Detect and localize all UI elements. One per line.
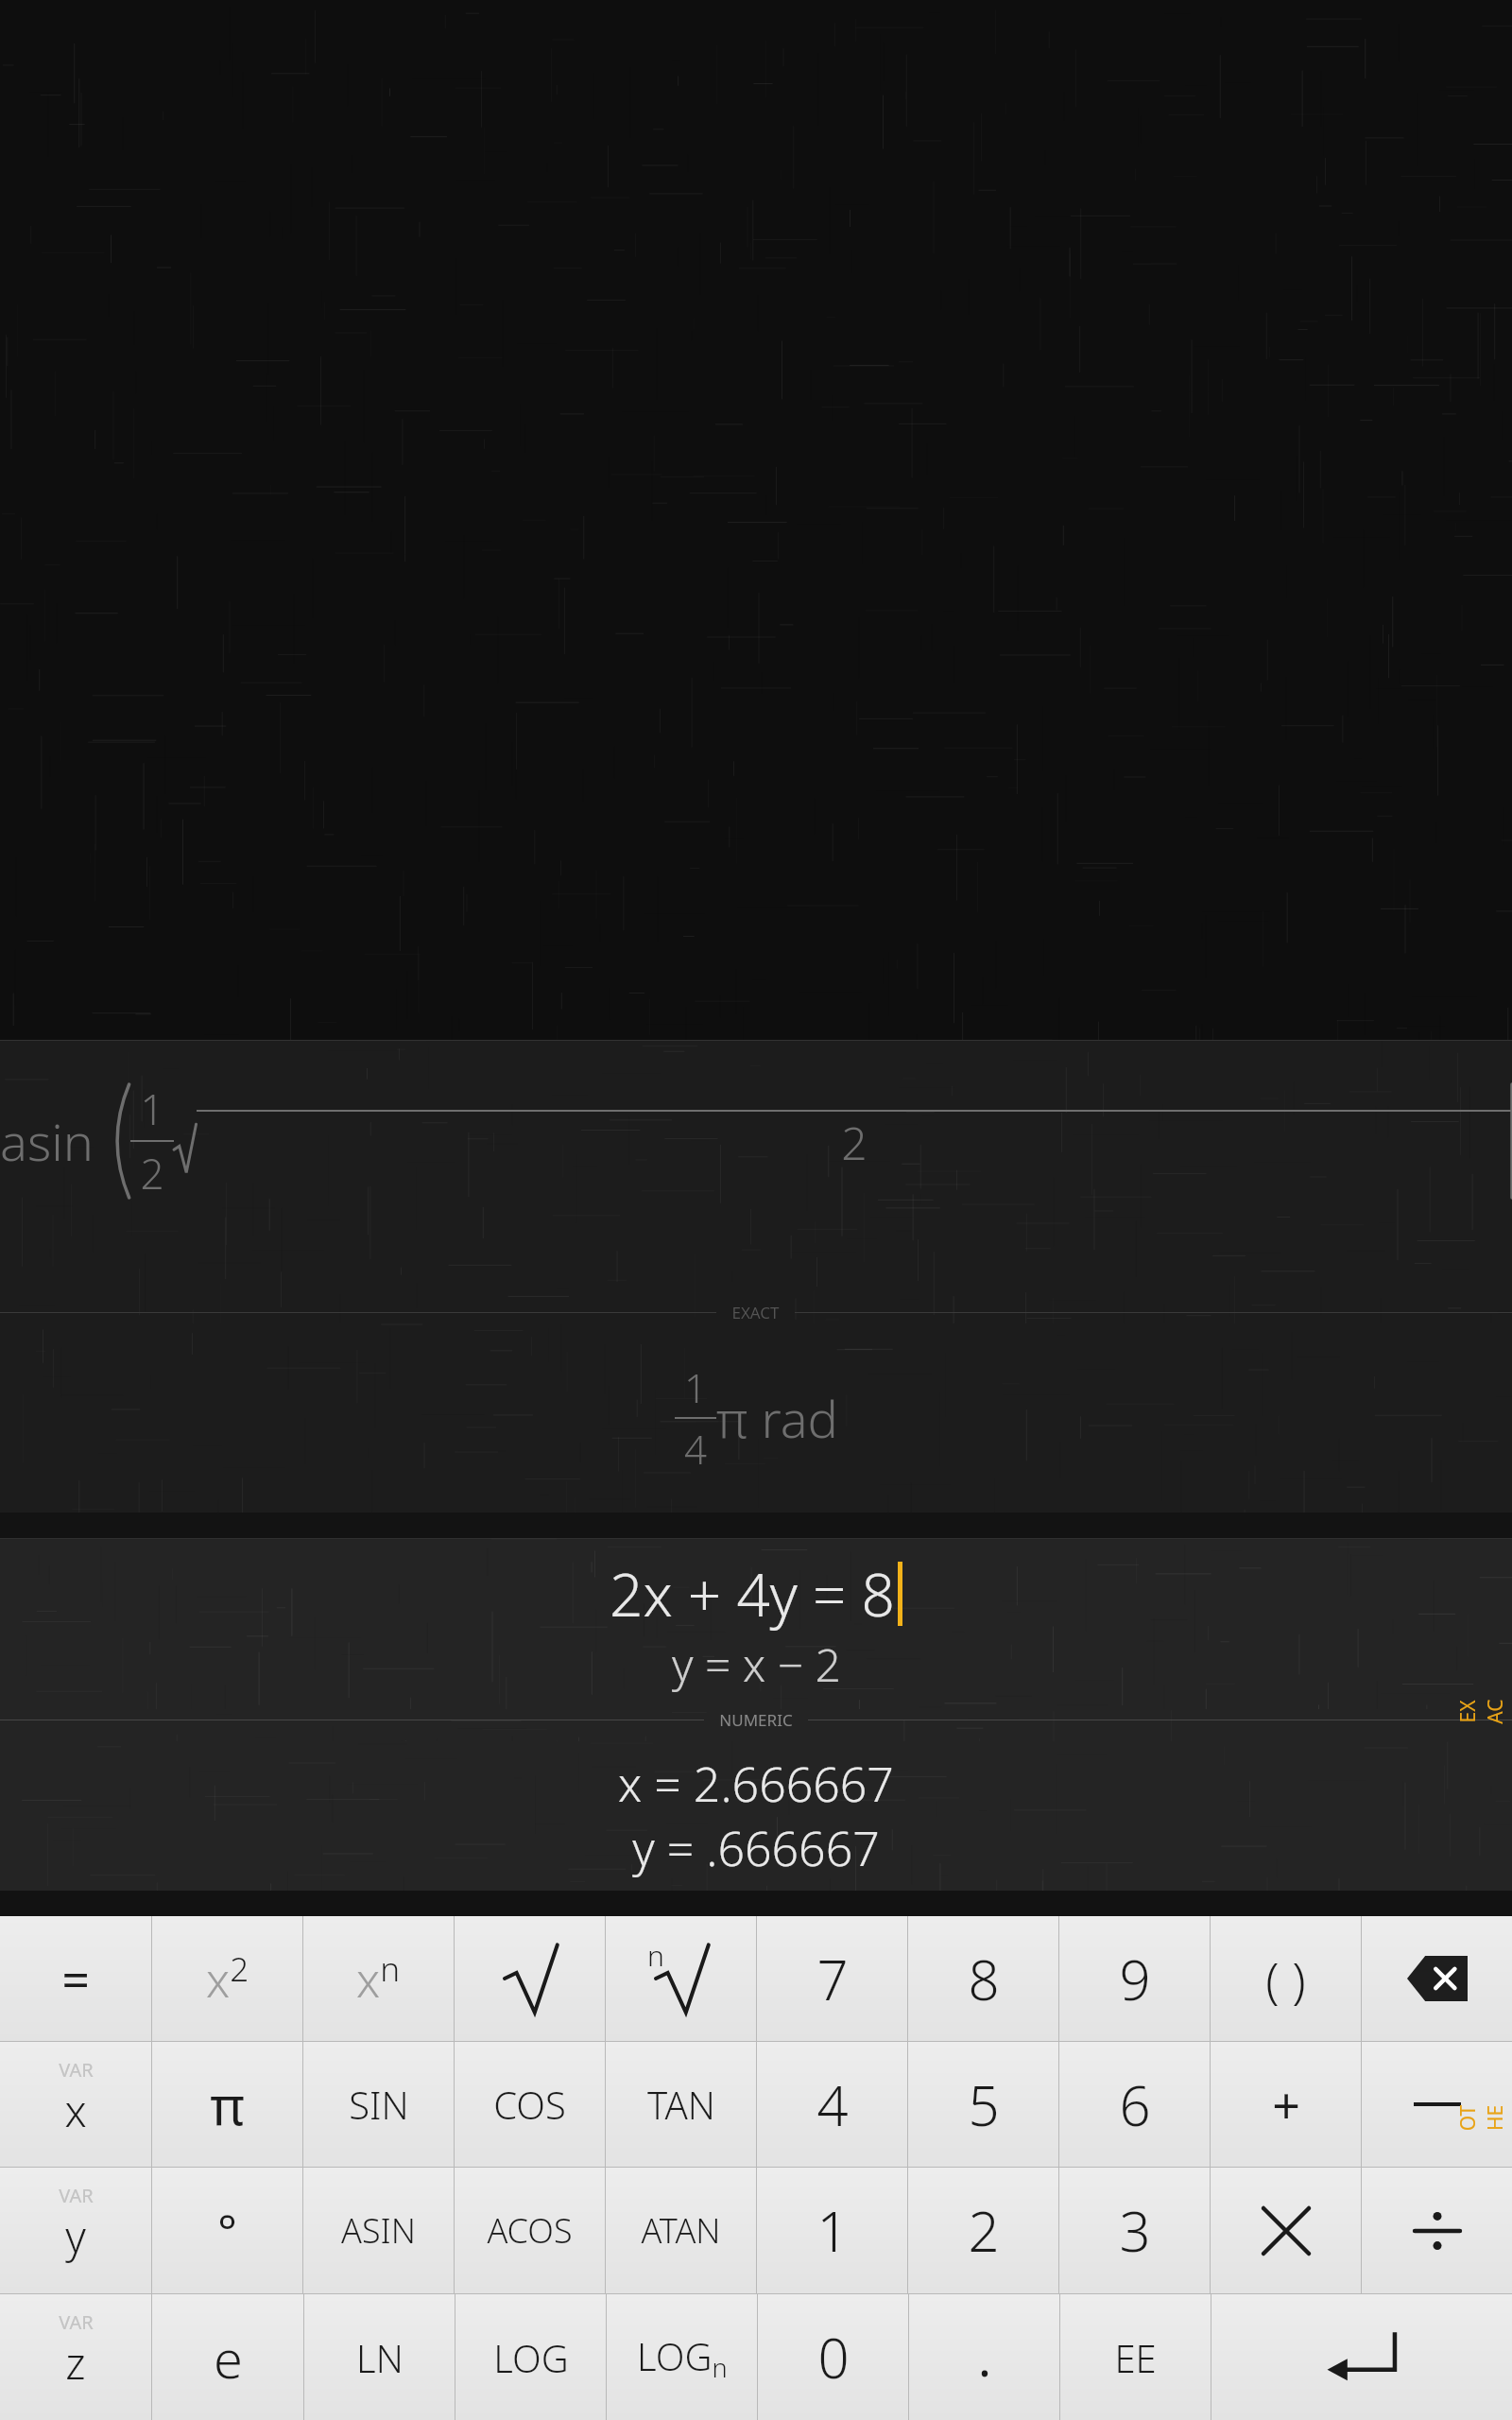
staticText: 2 [140,1145,164,1201]
button[interactable]: ASIN [303,2168,454,2293]
staticText: LOGn [637,2330,728,2385]
button[interactable]: Nth root [606,1916,756,2041]
staticText: x = 2.666667 [618,1752,894,1816]
staticText: y [65,2206,86,2266]
staticText: ATAN [641,2207,721,2254]
staticText: COS [493,2079,566,2130]
staticText: ACOS [487,2207,573,2254]
button[interactable]: LN [304,2294,455,2420]
staticText: . [978,2324,991,2391]
button[interactable]: 6 [1059,2042,1210,2167]
button[interactable]: asin [0,1040,1512,1323]
staticText: xn [356,1946,401,2012]
staticText: 1 [140,1080,164,1137]
staticText: 4 [684,1422,707,1476]
staticText: 1 [816,2193,849,2268]
button[interactable]: Square [152,1916,302,2041]
button[interactable]: Decimal point [909,2294,1059,2420]
staticText: SIN [349,2079,409,2130]
button[interactable]: TAN [606,2042,756,2167]
staticText: 7 [816,1942,849,2016]
staticText: NUMERIC [719,1709,793,1731]
button[interactable]: EE [1060,2294,1211,2420]
button[interactable]: Plus [1211,2042,1361,2167]
button[interactable]: 2x + 4y = 8 [0,1539,1512,1709]
staticText: ( ) [1265,1945,1306,2013]
staticText: 3 [1119,2193,1151,2268]
button[interactable]: Degrees [152,2168,302,2293]
staticText: = [61,1945,90,2013]
button[interactable]: Equals [0,1916,151,2041]
staticText: 1 [684,1360,707,1414]
button[interactable]: OTHER [1478,2066,1512,2169]
staticText: VAR [59,2183,94,2208]
button[interactable]: 9 [1059,1916,1210,2041]
staticText: e [214,2322,243,2394]
button[interactable]: Square root [455,1916,605,2041]
button[interactable]: 2 [908,2168,1058,2293]
staticText: 2 [968,2193,1000,2268]
staticText: VAR [59,2309,94,2335]
staticText: 2 [841,1112,868,1173]
staticText: ° [217,2200,237,2261]
staticText: EXACT [1454,1694,1512,1729]
button[interactable]: ACOS [455,2168,605,2293]
button[interactable]: Enter [1211,2294,1512,2420]
staticText: + [1272,2071,1300,2138]
button[interactable]: Power [303,1916,454,2041]
button[interactable]: 5 [908,2042,1058,2167]
button[interactable]: 0 [758,2294,908,2420]
button[interactable]: LOG [455,2294,606,2420]
staticText: x2 [206,1946,249,2012]
button[interactable]: Minus [1362,2042,1512,2167]
button[interactable]: Pi [152,2042,302,2167]
staticText: OTHER [1454,2101,1512,2135]
staticText: x [64,2081,87,2140]
button[interactable]: COS [455,2042,605,2167]
staticText: asin [0,1106,94,1176]
staticText: 4 [816,2067,849,2142]
staticText: 0 [817,2320,850,2394]
staticText: z [65,2333,86,2393]
staticText: 6 [1119,2067,1151,2142]
staticText: 8 [968,1942,1000,2016]
staticText: VAR [59,2057,94,2083]
button[interactable]: Variable y [0,2168,151,2293]
button[interactable]: x = 2.666667 [0,1741,1512,1891]
staticText: LN [356,2332,404,2383]
staticText: y = x − 2 [672,1633,841,1695]
button[interactable]: 1 [0,1323,1512,1512]
button[interactable]: 4 [757,2042,907,2167]
button[interactable]: EXACT [1478,1659,1512,1763]
staticText: EXACT [731,1302,780,1323]
staticText: 5 [968,2067,1000,2142]
button[interactable]: Parentheses [1211,1916,1361,2041]
button[interactable]: Divide [1362,2168,1512,2293]
button[interactable]: 3 [1059,2168,1210,2293]
staticText: n [647,1936,664,1975]
staticText: π [210,2068,245,2140]
staticText: LOG [493,2332,569,2383]
button[interactable]: Backspace [1362,1916,1512,2041]
staticText: y = .666667 [632,1816,880,1880]
staticText: π rad [716,1383,838,1453]
button[interactable]: 7 [757,1916,907,2041]
staticText: 9 [1119,1942,1151,2016]
button[interactable]: 1 [757,2168,907,2293]
button[interactable]: Variable x [0,2042,151,2167]
staticText: EE [1114,2332,1157,2383]
button[interactable]: ATAN [606,2168,756,2293]
staticText: 2x + 4y = 8 [610,1554,895,1633]
button[interactable]: 8 [908,1916,1058,2041]
button[interactable]: Euler's number [152,2294,303,2420]
button[interactable]: Variable z [0,2294,151,2420]
button[interactable]: SIN [303,2042,454,2167]
staticText: TAN [647,2079,715,2130]
staticText: ASIN [341,2207,416,2254]
button[interactable]: Multiply [1211,2168,1361,2293]
button[interactable]: Log base n [607,2294,757,2420]
